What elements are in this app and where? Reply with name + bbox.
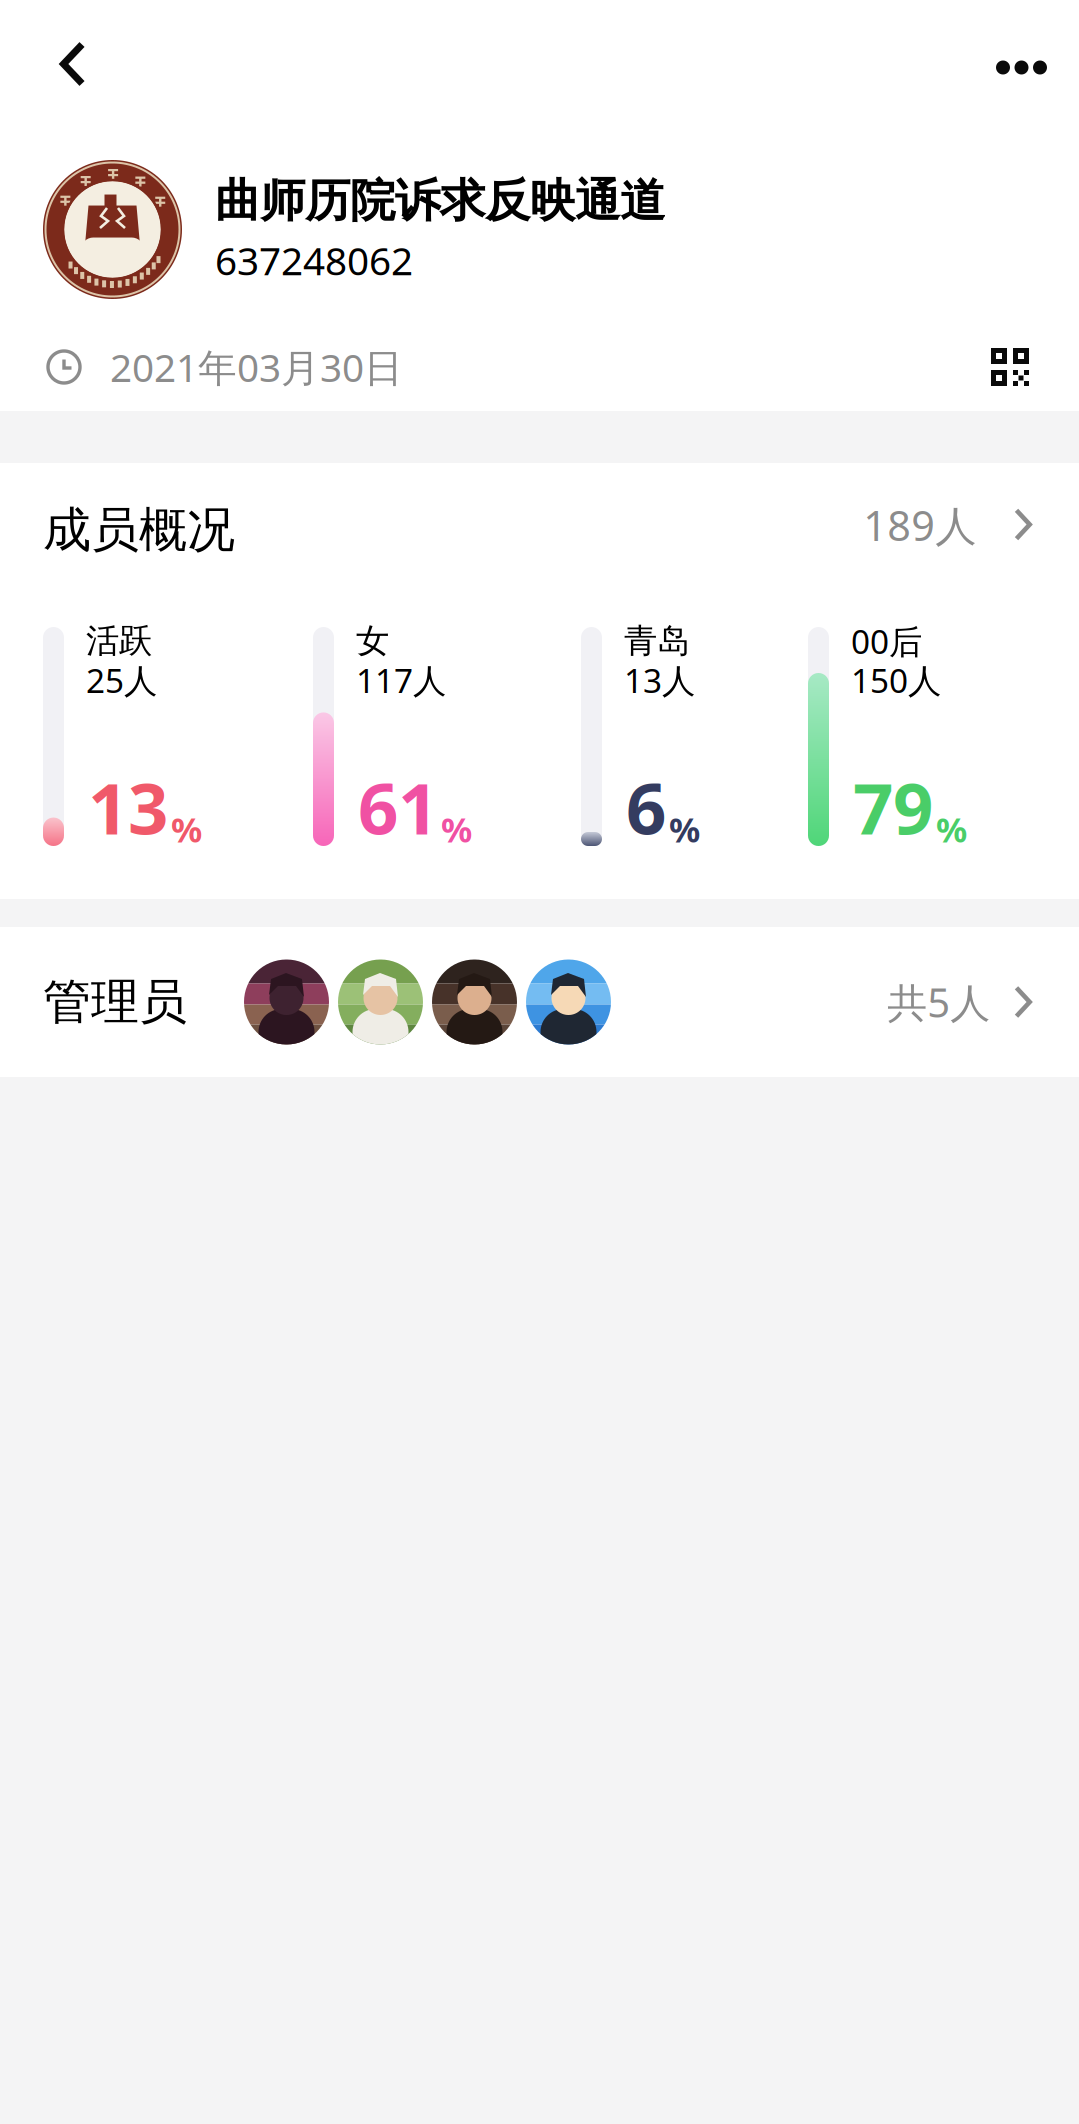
button[interactable]: More options xyxy=(966,2,1079,114)
staticText: 189人 xyxy=(863,498,976,552)
staticText: 79 xyxy=(853,760,933,854)
button[interactable]: 管理员 xyxy=(0,927,1079,1077)
staticText: % xyxy=(669,806,700,852)
staticText: % xyxy=(936,806,967,852)
staticText: 637248062 xyxy=(215,235,413,286)
staticText: 青岛 xyxy=(624,620,690,661)
staticText: 25人 xyxy=(86,658,157,702)
staticText: 150人 xyxy=(851,658,941,702)
button[interactable]: Group QR code xyxy=(991,334,1079,400)
staticText: 曲师历院诉求反映通道 xyxy=(215,173,665,229)
staticText: 共5人 xyxy=(887,975,990,1028)
button[interactable]: 成员概况 xyxy=(0,463,1079,564)
staticText: 61 xyxy=(358,760,438,854)
staticText: 6 xyxy=(626,760,666,854)
staticText: % xyxy=(171,806,202,852)
staticText: 2021年03月30日 xyxy=(110,341,403,393)
staticText: 成员概况 xyxy=(43,500,235,559)
button[interactable]: Back xyxy=(0,0,126,117)
staticText: 女 xyxy=(356,620,389,661)
staticText: 117人 xyxy=(356,658,446,702)
staticText: % xyxy=(441,806,472,852)
staticText: 活跃 xyxy=(86,620,152,661)
staticText: 13 xyxy=(88,760,168,854)
staticText: 管理员 xyxy=(43,972,187,1031)
staticText: 13人 xyxy=(624,658,695,702)
staticText: 00后 xyxy=(851,619,922,663)
